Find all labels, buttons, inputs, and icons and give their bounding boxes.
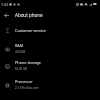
staticText: Customer service [15, 28, 46, 33]
button[interactable]: Phone storage [0, 56, 100, 73]
staticText: 4.00 GB [15, 50, 26, 54]
staticText: 1:43 [1, 2, 8, 7]
button[interactable]: Customer service [0, 22, 100, 39]
staticText: 2.3 GHz Octa-core [15, 86, 39, 90]
button[interactable]: Back [0, 9, 13, 22]
staticText: 64.00 GB [15, 67, 27, 71]
staticText: Phone storage [15, 60, 42, 65]
button[interactable]: Processor [0, 75, 100, 92]
staticText: Processor [15, 79, 33, 84]
button[interactable]: RAM [0, 39, 100, 56]
staticText: About phone [15, 12, 43, 18]
staticText: RAM [15, 43, 24, 48]
